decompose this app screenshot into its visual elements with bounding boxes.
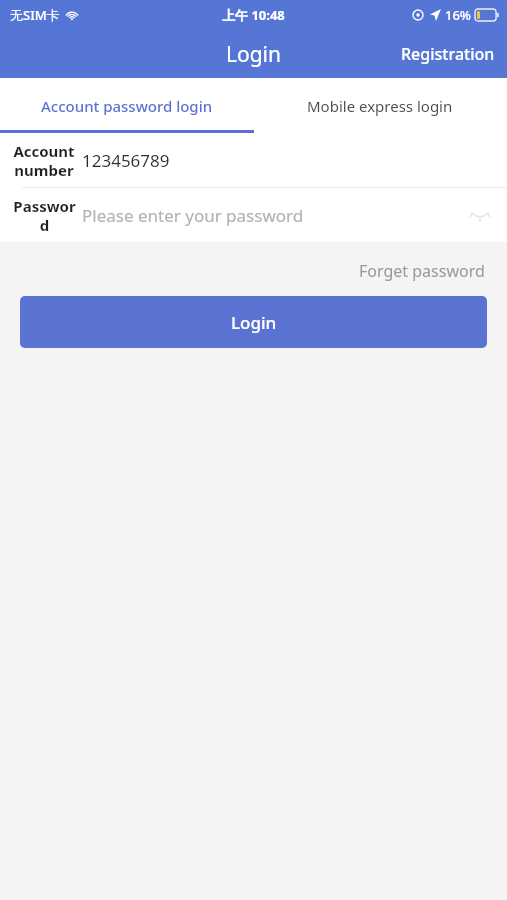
staticText: 123456789 <box>82 149 170 172</box>
staticText: Account password login <box>41 96 213 116</box>
staticText: Login <box>231 311 277 334</box>
staticText: Registration <box>401 43 495 65</box>
staticText: Mobile express login <box>307 96 453 116</box>
button[interactable]: Registration <box>389 35 507 73</box>
staticText: 上午 10:48 <box>222 6 285 24</box>
staticText: Login <box>226 40 282 69</box>
button[interactable]: Account number <box>0 133 507 187</box>
staticText: Account number <box>13 141 75 180</box>
staticText: Passwor d <box>13 196 76 235</box>
button[interactable]: Forget password <box>337 256 507 286</box>
staticText: Please enter your password <box>82 204 465 227</box>
button[interactable]: Account password login <box>0 78 253 133</box>
staticText: 16% <box>445 6 471 24</box>
staticText: Forget password <box>359 260 485 282</box>
staticText: 无SIM卡 <box>10 6 60 24</box>
button[interactable]: Mobile express login <box>253 78 507 133</box>
button[interactable]: Passwor d <box>0 188 507 242</box>
button[interactable]: Login <box>20 296 487 348</box>
button[interactable]: Show password <box>465 200 495 230</box>
